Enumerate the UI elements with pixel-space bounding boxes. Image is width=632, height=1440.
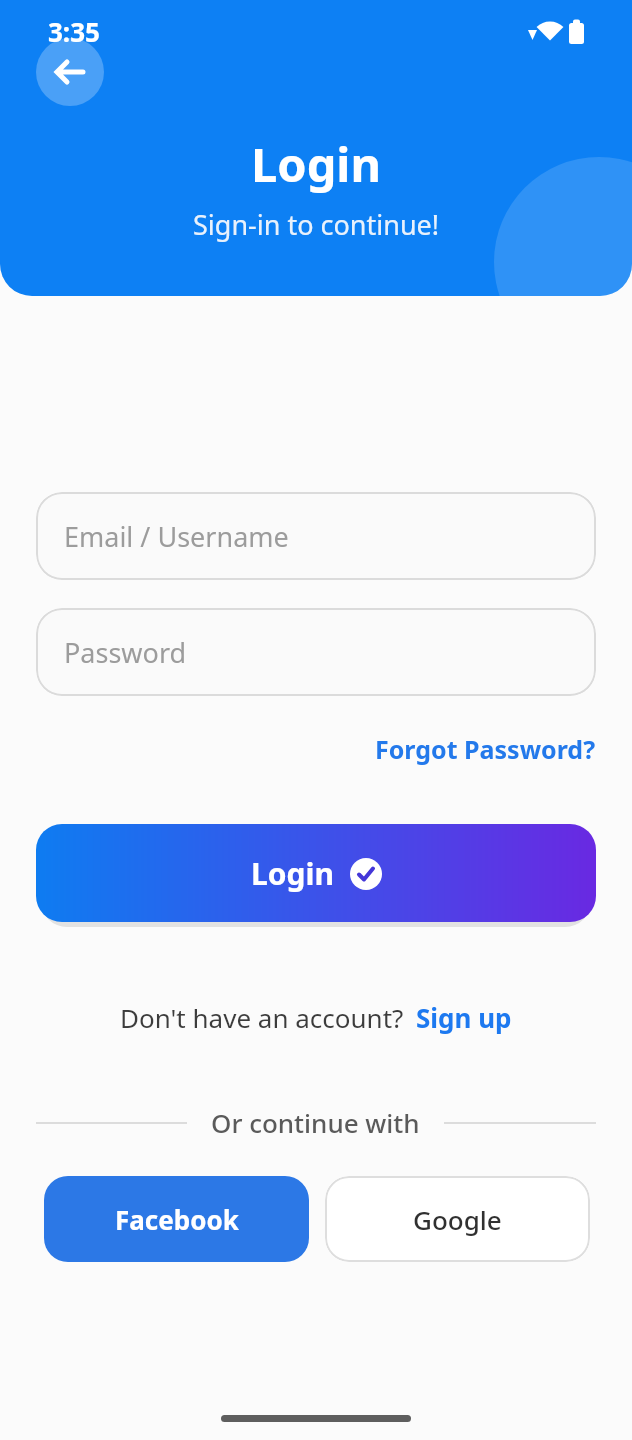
- staticText: Password: [64, 634, 187, 671]
- staticText: Facebook: [115, 1202, 239, 1237]
- button[interactable]: [36, 38, 104, 106]
- staticText: Login: [251, 132, 381, 196]
- button[interactable]: Password: [36, 608, 596, 696]
- staticText: Login: [251, 853, 334, 894]
- staticText: Sign-in to continue!: [193, 206, 440, 243]
- staticText: Google: [413, 1202, 502, 1237]
- staticText: Email / Username: [64, 518, 289, 555]
- button[interactable]: Google: [325, 1176, 590, 1262]
- button[interactable]: Forgot Password?: [375, 732, 596, 766]
- button[interactable]: Login: [36, 824, 596, 922]
- staticText: 3:35: [48, 14, 100, 49]
- button[interactable]: Sign up: [416, 1000, 512, 1035]
- button[interactable]: Email / Username: [36, 492, 596, 580]
- staticText: Or continue with: [211, 1105, 420, 1140]
- button[interactable]: Facebook: [44, 1176, 309, 1262]
- staticText: Don't have an account?: [120, 1000, 404, 1035]
